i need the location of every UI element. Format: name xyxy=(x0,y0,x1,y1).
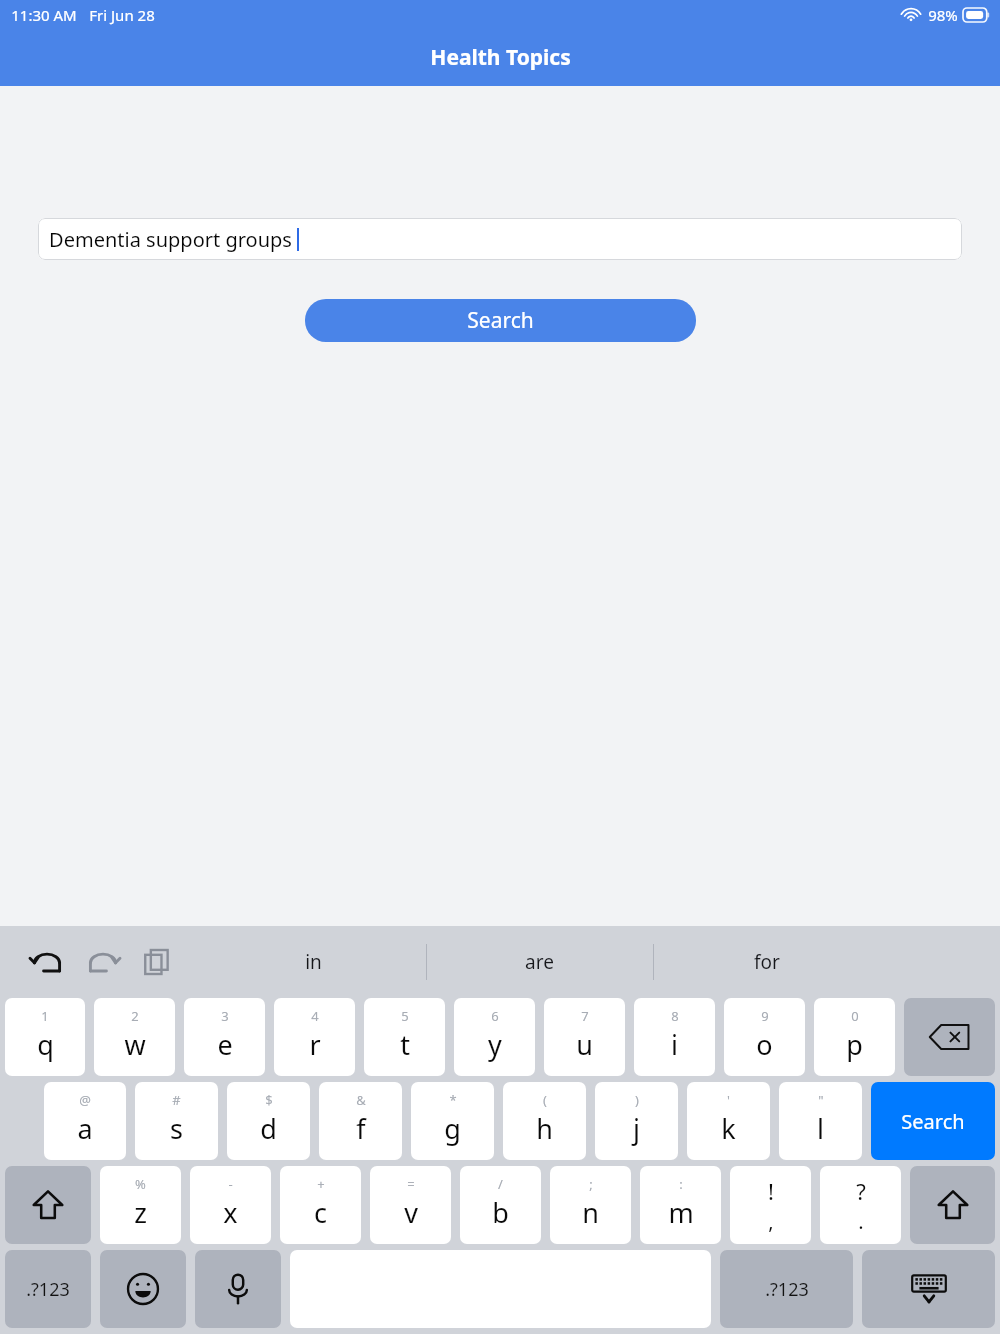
staticText: 6 xyxy=(491,1007,499,1025)
button[interactable]: * xyxy=(411,1082,494,1160)
button[interactable]: # xyxy=(135,1082,218,1160)
staticText: e xyxy=(217,1026,233,1063)
staticText: ) xyxy=(635,1091,639,1109)
button[interactable]: 0 xyxy=(814,998,895,1076)
button[interactable]: $ xyxy=(227,1082,310,1160)
staticText: o xyxy=(756,1026,773,1063)
staticText: Fri Jun 28 xyxy=(89,5,155,25)
button[interactable]: & xyxy=(319,1082,402,1160)
staticText: Search xyxy=(467,306,534,335)
staticText: i xyxy=(671,1026,678,1063)
staticText: 5 xyxy=(401,1007,409,1025)
staticText: m xyxy=(668,1194,694,1231)
button[interactable]: Hide keyboard xyxy=(862,1250,995,1328)
button[interactable]: Shift xyxy=(910,1166,995,1244)
button[interactable]: 2 xyxy=(94,998,175,1076)
staticText: z xyxy=(134,1194,147,1231)
staticText: a xyxy=(77,1110,93,1147)
button[interactable]: are xyxy=(426,926,653,998)
staticText: 2 xyxy=(131,1007,139,1025)
staticText: # xyxy=(172,1091,181,1109)
staticText: = xyxy=(407,1175,415,1193)
staticText: & xyxy=(356,1091,366,1109)
staticText: ! xyxy=(768,1176,774,1206)
button[interactable]: Emoji xyxy=(100,1250,186,1328)
button[interactable]: 4 xyxy=(274,998,355,1076)
staticText: : xyxy=(679,1175,683,1193)
staticText: . xyxy=(858,1208,864,1235)
staticText: Health Topics xyxy=(430,43,571,72)
button[interactable]: : xyxy=(640,1166,721,1244)
button[interactable]: for xyxy=(653,926,880,998)
staticText: f xyxy=(356,1110,366,1147)
staticText: q xyxy=(37,1026,54,1063)
staticText: 0 xyxy=(851,1007,859,1025)
button[interactable]: Search xyxy=(871,1082,995,1160)
button[interactable]: 1 xyxy=(5,998,85,1076)
button[interactable]: ' xyxy=(687,1082,770,1160)
staticText: 8 xyxy=(671,1007,679,1025)
button[interactable]: ? xyxy=(820,1166,901,1244)
staticText: 98% xyxy=(928,5,958,25)
button[interactable]: Dementia support groups xyxy=(38,218,962,260)
staticText: ' xyxy=(727,1091,730,1109)
staticText: y xyxy=(488,1026,502,1063)
button[interactable]: Numbers xyxy=(720,1250,853,1328)
button[interactable]: 3 xyxy=(184,998,265,1076)
staticText: x xyxy=(223,1194,238,1231)
button[interactable]: ) xyxy=(595,1082,678,1160)
staticText: Dementia support groups xyxy=(49,226,292,253)
button[interactable]: Dictation xyxy=(195,1250,281,1328)
button[interactable]: Shift xyxy=(5,1166,91,1244)
staticText: 9 xyxy=(761,1007,769,1025)
button[interactable]: + xyxy=(280,1166,361,1244)
staticText: d xyxy=(260,1110,277,1147)
button[interactable]: / xyxy=(460,1166,541,1244)
button[interactable]: Undo xyxy=(26,941,68,983)
button[interactable]: 6 xyxy=(454,998,535,1076)
button[interactable]: - xyxy=(190,1166,271,1244)
staticText: 1 xyxy=(41,1007,49,1025)
staticText: r xyxy=(309,1026,321,1063)
button[interactable]: " xyxy=(779,1082,862,1160)
staticText: p xyxy=(846,1026,863,1063)
staticText: @ xyxy=(79,1091,91,1109)
staticText: v xyxy=(404,1194,418,1231)
button[interactable]: 9 xyxy=(724,998,805,1076)
button[interactable]: @ xyxy=(44,1082,126,1160)
button[interactable]: Backspace xyxy=(904,998,995,1076)
staticText: t xyxy=(400,1026,410,1063)
staticText: 4 xyxy=(311,1007,319,1025)
staticText: $ xyxy=(265,1091,273,1109)
button[interactable]: % xyxy=(100,1166,181,1244)
staticText: k xyxy=(721,1110,736,1147)
button[interactable]: in xyxy=(200,926,426,998)
staticText: % xyxy=(135,1175,146,1193)
staticText: - xyxy=(228,1175,233,1193)
staticText: u xyxy=(576,1026,593,1063)
button[interactable]: = xyxy=(370,1166,451,1244)
button[interactable]: 7 xyxy=(544,998,625,1076)
staticText: are xyxy=(525,949,554,975)
button[interactable]: ( xyxy=(503,1082,586,1160)
button[interactable]: 8 xyxy=(634,998,715,1076)
button[interactable]: ! xyxy=(730,1166,811,1244)
button[interactable]: Numbers xyxy=(5,1250,91,1328)
staticText: l xyxy=(817,1110,824,1147)
button[interactable]: ; xyxy=(550,1166,631,1244)
staticText: .?123 xyxy=(765,1277,809,1302)
staticText: s xyxy=(170,1110,183,1147)
staticText: w xyxy=(124,1026,146,1063)
staticText: 7 xyxy=(581,1007,589,1025)
button[interactable]: Search xyxy=(305,299,696,342)
staticText: + xyxy=(317,1175,325,1193)
staticText: ; xyxy=(589,1175,593,1193)
button[interactable]: 5 xyxy=(364,998,445,1076)
button[interactable]: Paste xyxy=(136,941,178,983)
staticText: , xyxy=(768,1208,774,1235)
staticText: Search xyxy=(901,1108,965,1135)
button[interactable]: Redo xyxy=(82,941,124,983)
staticText: .?123 xyxy=(26,1277,70,1302)
staticText: for xyxy=(754,949,780,975)
